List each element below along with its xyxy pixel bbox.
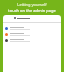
staticText: Letting yourself (17, 2, 47, 7)
button[interactable] (3, 31, 61, 37)
button[interactable] (3, 25, 61, 31)
button[interactable] (3, 37, 61, 43)
staticText: touch on the admin page (8, 8, 56, 13)
